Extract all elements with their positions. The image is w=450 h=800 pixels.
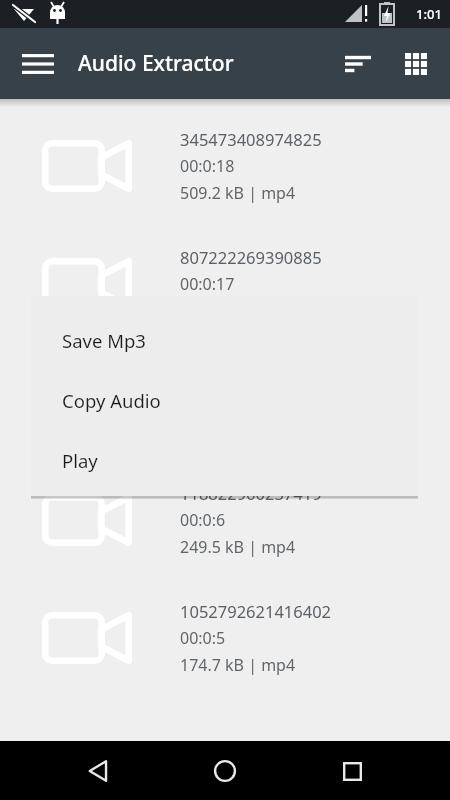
staticText: Save Mp3 bbox=[62, 328, 146, 353]
staticText: 807222269390885 bbox=[180, 246, 322, 268]
button[interactable]: 693880241230947 bbox=[0, 343, 450, 461]
staticText: 174.7 kB | mp4 bbox=[180, 654, 296, 676]
staticText: 00:0:17 bbox=[180, 273, 235, 295]
button[interactable]: 807222269390885 bbox=[0, 225, 450, 343]
button[interactable]: Copy Audio bbox=[31, 370, 418, 430]
staticText: 00:0:18 bbox=[180, 155, 235, 177]
button[interactable]: Back bbox=[71, 743, 127, 799]
staticText: 00:0:6 bbox=[180, 509, 226, 531]
button[interactable]: Grid view bbox=[390, 38, 442, 90]
staticText: 509.2 kB | mp4 bbox=[180, 182, 296, 204]
staticText: 00:0:5 bbox=[180, 627, 226, 649]
button[interactable]: 118822960237419 bbox=[0, 461, 450, 579]
staticText: 345473408974825 bbox=[180, 128, 322, 150]
staticText: 249.5 kB | mp4 bbox=[180, 536, 296, 558]
staticText: 1052792621416402 bbox=[180, 600, 332, 622]
button[interactable]: 1052792621416402 bbox=[0, 579, 450, 697]
button[interactable]: Open navigation drawer bbox=[12, 38, 64, 90]
button[interactable]: Recent apps bbox=[324, 743, 380, 799]
staticText: Play bbox=[62, 448, 98, 473]
staticText: 1:01 bbox=[416, 5, 442, 23]
button[interactable]: Sort bbox=[332, 38, 384, 90]
button[interactable]: Save Mp3 bbox=[31, 310, 418, 370]
staticText: Audio Extractor bbox=[78, 49, 234, 78]
button[interactable]: 345473408974825 bbox=[0, 107, 450, 225]
button[interactable]: Play bbox=[31, 430, 418, 490]
button[interactable]: Home bbox=[197, 743, 253, 799]
staticText: 118822960237419 bbox=[180, 482, 322, 504]
staticText: Copy Audio bbox=[62, 388, 161, 413]
